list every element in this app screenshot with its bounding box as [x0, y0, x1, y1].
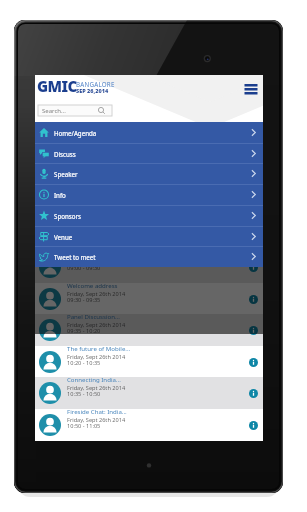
button[interactable]: Search... — [38, 105, 112, 116]
staticText: Discuss — [54, 150, 76, 158]
staticText: The future of Mobile... — [67, 344, 131, 352]
button[interactable]: Info — [35, 184, 263, 205]
staticText: Sponsors — [54, 212, 81, 220]
staticText: Panel Discussion... — [67, 312, 120, 320]
button[interactable]: Session info — [249, 295, 258, 304]
staticText: Welcome address — [67, 281, 118, 289]
staticText: Speaker — [54, 170, 78, 178]
button[interactable]: Session info — [249, 389, 258, 398]
staticText: 10:20 - 10:35 — [67, 359, 101, 367]
staticText: Tweet to meet — [54, 253, 96, 261]
button[interactable]: Registration — [35, 251, 263, 283]
button[interactable]: Discuss — [35, 143, 263, 164]
staticText: 09:00 - 09:30 — [67, 264, 101, 272]
staticText: Registration — [67, 249, 102, 257]
staticText: Venue — [54, 233, 73, 241]
staticText: Home/Agenda — [54, 129, 97, 137]
button[interactable]: Open navigation menu — [242, 82, 260, 96]
staticText: 09:30 - 09:35 — [67, 296, 101, 304]
button[interactable]: Session info — [249, 358, 258, 367]
button[interactable]: Welcome address — [35, 283, 263, 315]
staticText: 09:35 - 10:20 — [67, 327, 101, 335]
staticText: 10:50 - 11:05 — [67, 422, 101, 430]
button[interactable]: Venue — [35, 226, 263, 247]
staticText: Friday, Sept 26th 2014 — [67, 321, 126, 329]
staticText: Friday, Sept 26th 2014 — [67, 353, 126, 361]
staticText: Info — [54, 191, 66, 199]
staticText: Search... — [42, 107, 66, 115]
button[interactable]: Speaker — [35, 163, 263, 184]
staticText: SEP 26,2014 — [76, 87, 109, 94]
button[interactable]: Tweet to meet — [35, 246, 263, 267]
button[interactable]: Connecting India... — [35, 377, 263, 409]
button[interactable]: Sponsors — [35, 205, 263, 226]
button[interactable]: The future of Mobile... — [35, 346, 263, 378]
staticText: BANGALORE — [76, 80, 115, 88]
staticText: Connecting India... — [67, 375, 121, 383]
staticText: Friday, Sept 26th 2014 — [67, 384, 126, 392]
button[interactable]: Panel Discussion... — [35, 314, 263, 346]
staticText: Friday, Sept 26th 2014 — [67, 290, 126, 298]
staticText: Friday, Sept 26th 2014 — [67, 258, 126, 266]
button[interactable]: Home/Agenda — [35, 122, 263, 143]
staticText: Friday, Sept 26th 2014 — [67, 416, 126, 424]
button[interactable]: Fireside Chat: India... — [35, 409, 263, 441]
button[interactable]: Session info — [249, 421, 258, 430]
staticText: 10:35 - 10:50 — [67, 390, 101, 398]
staticText: GMIC — [37, 76, 77, 96]
button[interactable]: Session info — [249, 263, 258, 272]
staticText: Fireside Chat: India... — [67, 407, 127, 415]
button[interactable]: Session info — [249, 326, 258, 335]
